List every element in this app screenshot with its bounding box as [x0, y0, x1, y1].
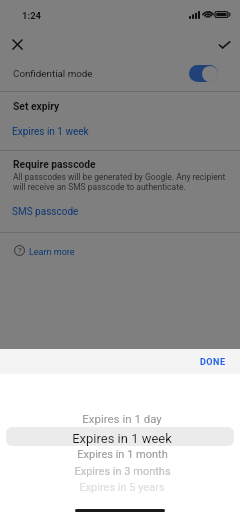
staticText: Learn more — [29, 247, 75, 258]
staticText: Expires in 1 day — [82, 412, 162, 425]
staticText: 1:24 — [22, 10, 42, 21]
button[interactable]: Close — [6, 33, 28, 55]
button[interactable]: DONE — [185, 351, 240, 373]
button[interactable]: Expires in 1 week — [0, 430, 240, 446]
staticText: Set expiry — [13, 100, 60, 112]
staticText: ? — [18, 246, 22, 255]
button[interactable]: Expires in 1 day — [0, 410, 240, 426]
button[interactable]: Confidential mode — [0, 58, 240, 91]
button[interactable]: Expires in 1 month — [0, 446, 240, 462]
staticText: All passcodes will be generated by Googl… — [13, 172, 228, 192]
staticText: Expires in 1 week — [72, 431, 172, 446]
staticText: Expires in 5 years — [79, 481, 165, 494]
staticText: Confidential mode — [13, 68, 93, 79]
button[interactable]: ? — [0, 240, 240, 262]
button[interactable]: SMS passcode — [12, 206, 79, 218]
staticText: DONE — [200, 357, 226, 368]
button[interactable]: Expires in 5 years — [0, 479, 240, 495]
staticText: SMS passcode — [12, 206, 79, 218]
staticText: Expires in 1 week — [12, 126, 89, 138]
staticText: Expires in 3 months — [74, 465, 171, 478]
button[interactable]: Save — [213, 34, 235, 56]
button[interactable]: Expires in 3 months — [0, 463, 240, 479]
staticText: Expires in 1 month — [77, 448, 168, 461]
button[interactable]: Expires in 1 week — [12, 126, 89, 138]
staticText: Require passcode — [13, 158, 96, 170]
